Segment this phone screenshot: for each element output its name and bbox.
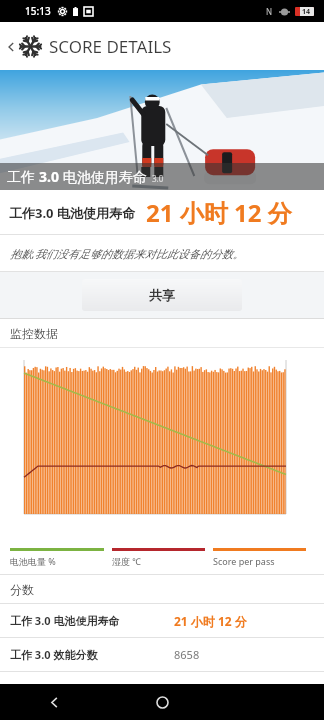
staticText: 电池使用寿命 [59, 167, 147, 186]
button[interactable]: 工作 3.0 效能分数 [0, 638, 324, 671]
button[interactable]: 工作 3.0 电池使用寿命 [0, 604, 324, 637]
staticText: 工作 [7, 167, 39, 186]
button[interactable]: Home [108, 684, 216, 720]
staticText: 8658 [174, 647, 200, 662]
button[interactable]: 共享 [82, 279, 242, 311]
staticText: 14 [302, 7, 311, 16]
staticText: 电池电量 % [10, 555, 56, 567]
staticText: 工作 3.0 电池使用寿命 [10, 613, 120, 628]
staticText: 3.0 [152, 173, 164, 184]
staticText: N [266, 6, 273, 17]
staticText: 3.0 [39, 167, 59, 186]
staticText: 监控数据 [10, 326, 58, 341]
staticText: 湿度 ℃ [112, 555, 142, 567]
staticText: 抱歉,我们没有足够的数据来对比此设备的分数。 [10, 246, 244, 261]
button[interactable]: Back [4, 40, 18, 54]
staticText: SCORE DETAILS [49, 35, 172, 58]
staticText: Score per pass [213, 555, 275, 567]
staticText: 共享 [149, 287, 175, 303]
staticText: 分数 [10, 582, 34, 597]
staticText: 工作 3.0 效能分数 [10, 647, 98, 662]
staticText: 15:13 [25, 4, 51, 18]
staticText: 21 小时 12 分 [146, 196, 292, 229]
button[interactable]: Back [0, 684, 108, 720]
staticText: 21 小时 12 分 [174, 613, 247, 629]
staticText: 工作3.0 电池使用寿命 [9, 204, 135, 222]
